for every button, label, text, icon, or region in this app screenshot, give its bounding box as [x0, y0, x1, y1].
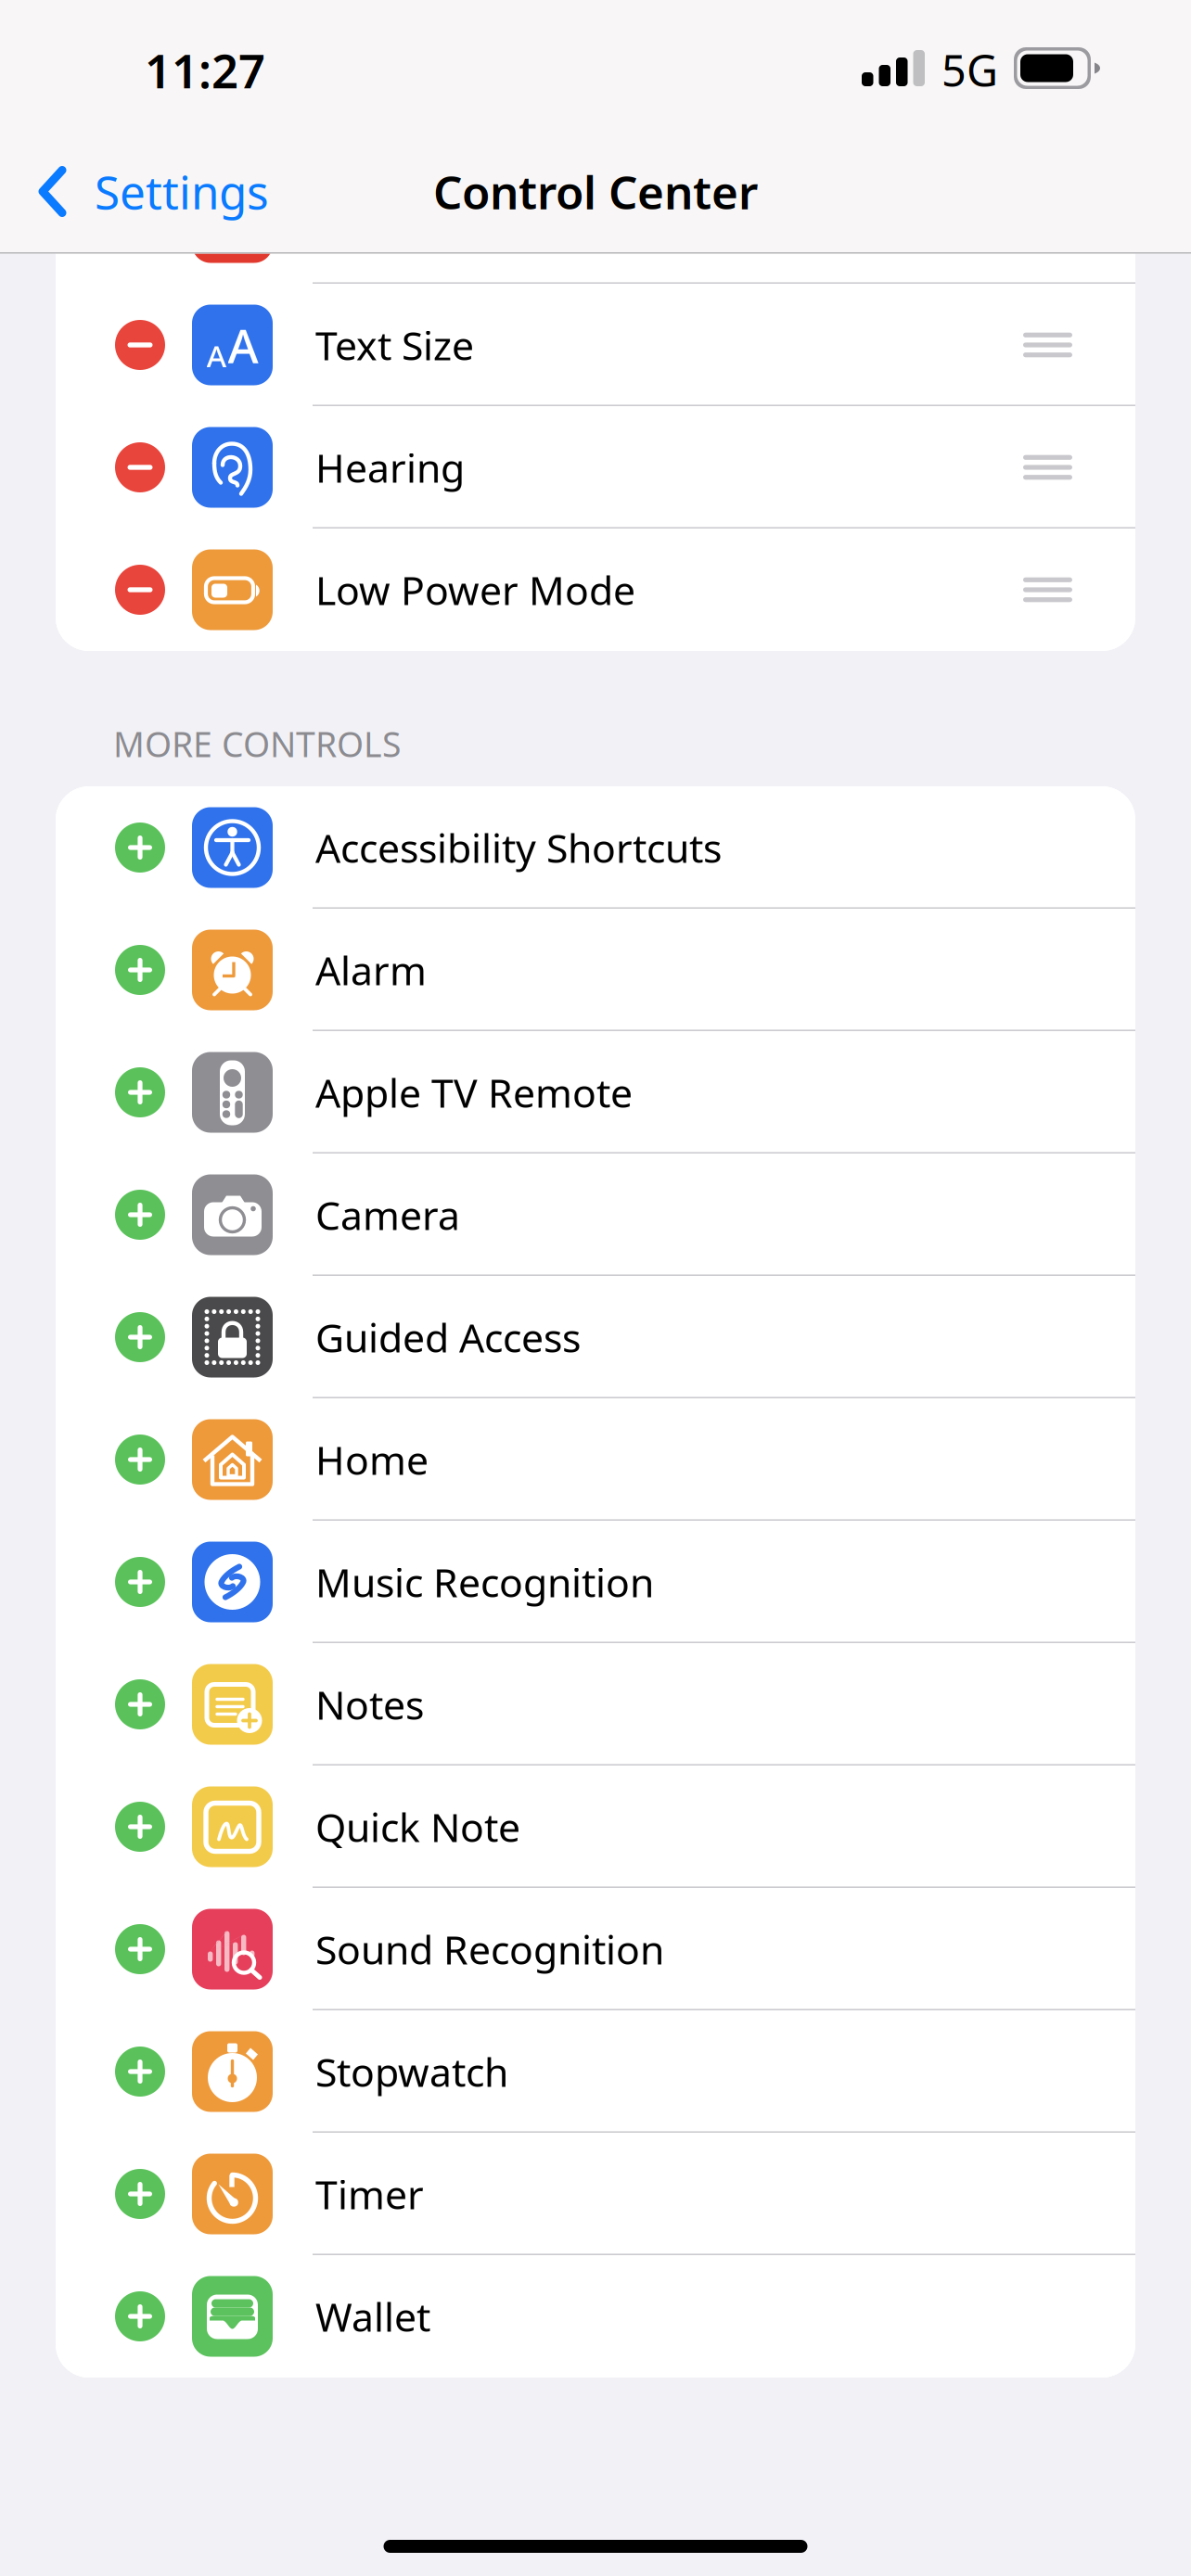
staticText: Stopwatch: [315, 2045, 508, 2098]
staticText: 11:27: [145, 39, 265, 101]
staticText: Quick Note: [315, 1801, 520, 1853]
staticText: Camera: [315, 1189, 460, 1241]
staticText: Control Center: [433, 161, 758, 222]
button[interactable]: Stopwatch: [56, 2010, 1135, 2133]
button[interactable]: Music Recognition: [56, 1521, 1135, 1643]
staticText: A: [228, 314, 258, 376]
staticText: Text Size: [315, 319, 474, 371]
button[interactable]: Wallet: [56, 2255, 1135, 2378]
staticText: Wallet: [315, 2290, 430, 2343]
button[interactable]: Accessibility Shortcuts: [56, 786, 1135, 909]
staticText: A: [206, 335, 227, 376]
button[interactable]: Hearing: [56, 406, 1135, 529]
staticText: Alarm: [315, 944, 427, 996]
button[interactable]: Timer: [56, 2133, 1135, 2255]
staticText: Accessibility Shortcuts: [315, 821, 722, 874]
button[interactable]: Apple TV Remote: [56, 1031, 1135, 1154]
staticText: Home: [315, 1433, 429, 1486]
staticText: Apple TV Remote: [315, 1066, 633, 1119]
staticText: Notes: [315, 1678, 424, 1731]
button[interactable]: Sound Recognition: [56, 1888, 1135, 2010]
button[interactable]: Alarm: [56, 909, 1135, 1031]
staticText: Low Power Mode: [315, 564, 635, 616]
button[interactable]: Camera: [56, 1154, 1135, 1276]
button[interactable]: Low Power Mode: [56, 529, 1135, 651]
button[interactable]: A: [56, 284, 1135, 406]
button[interactable]: Settings: [0, 131, 291, 252]
staticText: 5G: [941, 41, 998, 99]
button[interactable]: Quick Note: [56, 1766, 1135, 1888]
staticText: Sound Recognition: [315, 1923, 664, 1975]
staticText: Timer: [315, 2168, 424, 2220]
staticText: Settings: [95, 161, 269, 222]
button[interactable]: Notes: [56, 1643, 1135, 1766]
staticText: MORE CONTROLS: [113, 721, 401, 767]
staticText: Music Recognition: [315, 1556, 654, 1608]
button[interactable]: Screen Recording: [56, 161, 1135, 284]
staticText: Hearing: [315, 441, 465, 494]
button[interactable]: Guided Access: [56, 1276, 1135, 1398]
staticText: Screen Recording: [315, 196, 638, 249]
staticText: Guided Access: [315, 1311, 581, 1363]
button[interactable]: Home: [56, 1398, 1135, 1521]
